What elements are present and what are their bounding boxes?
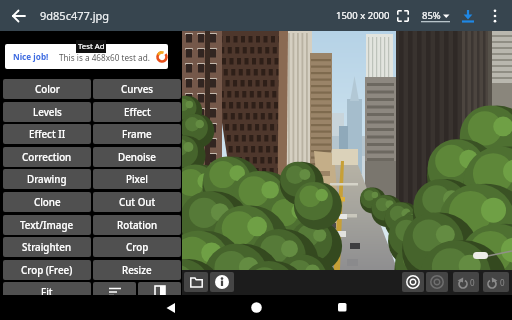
staticText: Effect [124, 106, 151, 119]
button[interactable] [210, 272, 234, 292]
button[interactable]: Effect II [3, 124, 91, 144]
button[interactable]: Color [3, 79, 91, 99]
staticText: 0 [498, 277, 505, 288]
button[interactable]: Text/Image [3, 215, 91, 235]
staticText: 0 [468, 277, 475, 288]
staticText: 85% [422, 9, 441, 22]
staticText: Crop [126, 241, 149, 254]
staticText: Pixel [126, 173, 149, 186]
button[interactable]: 85% [419, 0, 453, 31]
button[interactable]: Curves [93, 79, 181, 99]
staticText: Effect II [29, 128, 66, 141]
staticText: Frame [122, 128, 152, 141]
button[interactable]: 0 [483, 272, 509, 292]
staticText: 1500 x 2000 [336, 9, 390, 22]
button[interactable]: Crop (Free) [3, 260, 91, 280]
button[interactable]: 0 [453, 272, 479, 292]
staticText: Color [35, 83, 60, 96]
staticText: Crop (Free) [21, 264, 73, 277]
staticText: Nice job! [13, 51, 49, 62]
button[interactable]: Straighten [3, 237, 91, 257]
button[interactable]: Crop [93, 237, 181, 257]
button[interactable] [426, 272, 448, 292]
button[interactable]: Nice job! [5, 44, 168, 69]
button[interactable] [330, 297, 354, 318]
staticText: Levels [33, 106, 62, 119]
button[interactable] [396, 9, 410, 23]
button[interactable]: Clone [3, 192, 91, 212]
button[interactable] [457, 5, 478, 27]
staticText: Test Ad [78, 41, 105, 52]
button[interactable]: Effect [93, 102, 181, 122]
button[interactable] [138, 282, 181, 302]
button[interactable]: Denoise [93, 147, 181, 167]
button[interactable] [244, 297, 268, 318]
staticText: Straighten [22, 241, 72, 254]
button[interactable] [487, 5, 503, 27]
staticText: Drawing [27, 173, 67, 186]
staticText: Text/Image [20, 219, 74, 232]
staticText: Correction [22, 151, 72, 164]
button[interactable]: Frame [93, 124, 181, 144]
staticText: Curves [121, 83, 154, 96]
button[interactable] [402, 272, 424, 292]
button[interactable] [184, 272, 208, 292]
button[interactable]: Correction [3, 147, 91, 167]
button[interactable]: Cut Out [93, 192, 181, 212]
button[interactable]: Rotation [93, 215, 181, 235]
button[interactable]: Resize [93, 260, 181, 280]
button[interactable] [8, 5, 30, 27]
button[interactable]: Drawing [3, 169, 91, 189]
staticText: Fit [41, 286, 53, 299]
button[interactable]: Pixel [93, 169, 181, 189]
staticText: Rotation [117, 219, 158, 232]
staticText: This is a 468x60 test ad. [59, 52, 150, 63]
button[interactable]: Fit [3, 282, 91, 302]
staticText: 9d85c477.jpg [40, 8, 110, 23]
button[interactable] [93, 282, 136, 302]
staticText: Resize [122, 264, 152, 277]
staticText: Cut Out [119, 196, 156, 209]
button[interactable]: Levels [3, 102, 91, 122]
staticText: Clone [34, 196, 61, 209]
staticText: Denoise [118, 151, 156, 164]
button[interactable] [158, 297, 182, 318]
